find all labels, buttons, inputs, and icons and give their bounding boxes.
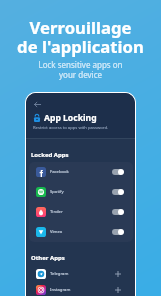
button[interactable]: Spotify bbox=[29, 182, 133, 202]
button[interactable]: Instagram bbox=[29, 282, 133, 296]
button[interactable]: Tinder bbox=[29, 202, 133, 222]
staticText: Other Apps bbox=[31, 254, 65, 262]
staticText: Restrict access to apps with password. bbox=[33, 125, 109, 131]
staticText: Tinder bbox=[50, 209, 63, 215]
staticText: Lock sensitive apps on your device bbox=[0, 59, 161, 81]
staticText: Verrouillage de l'application bbox=[0, 16, 161, 58]
staticText: Instagram bbox=[50, 287, 71, 293]
button[interactable]: Add Instagram bbox=[113, 285, 123, 295]
button[interactable]: Lock Tinder bbox=[112, 209, 124, 215]
button[interactable]: Lock Spotify bbox=[112, 189, 124, 195]
staticText: Spotify bbox=[50, 189, 64, 195]
button[interactable]: Facebook bbox=[29, 162, 133, 182]
button[interactable]: Telegram bbox=[29, 266, 133, 282]
button[interactable]: Add Telegram bbox=[113, 269, 123, 279]
button[interactable]: Vimeo bbox=[29, 222, 133, 242]
staticText: Telegram bbox=[50, 271, 69, 277]
staticText: App Locking bbox=[44, 112, 97, 124]
staticText: Facebook bbox=[50, 169, 69, 175]
staticText: Locked Apps bbox=[31, 151, 69, 159]
button[interactable]: Back bbox=[33, 100, 42, 109]
button[interactable]: Lock Vimeo bbox=[112, 229, 124, 235]
staticText: Vimeo bbox=[50, 229, 63, 235]
button[interactable]: Lock Facebook bbox=[112, 169, 124, 175]
